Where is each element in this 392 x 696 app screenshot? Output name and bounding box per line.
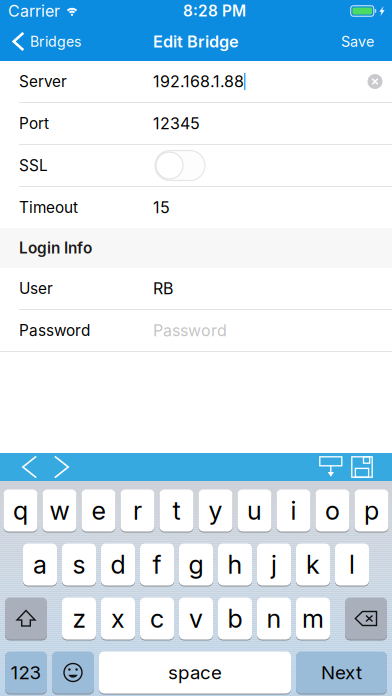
button[interactable]: space [99,651,291,694]
staticText: s [72,549,85,580]
button[interactable]: h [218,543,252,586]
button[interactable]: j [257,543,291,586]
button[interactable]: q [3,489,37,532]
button[interactable]: Next [296,651,387,694]
staticText: Password [19,321,90,340]
button[interactable]: Emoji [52,651,94,694]
staticText: j [271,549,277,580]
staticText: r [133,495,142,526]
staticText: k [306,549,320,580]
button[interactable]: 123 [5,651,47,694]
button[interactable]: g [179,543,213,586]
button[interactable]: c [140,597,174,640]
staticText: SSL [19,156,48,175]
button[interactable]: i [276,489,310,532]
button[interactable]: x [101,597,135,640]
staticText: 8:28 PM [183,2,246,20]
staticText: Edit Bridge [153,32,239,51]
staticText: l [349,549,355,580]
button[interactable]: n [257,597,291,640]
button[interactable]: m [296,597,330,640]
staticText: 123 [10,661,41,684]
staticText: Save [341,33,374,50]
button[interactable]: a [23,543,57,586]
staticText: Server [19,72,67,91]
staticText: Password [153,321,227,340]
button[interactable]: Port [0,103,392,144]
staticText: h [227,549,242,580]
staticText: i [290,495,296,526]
staticText: x [111,603,125,634]
button[interactable]: u [237,489,271,532]
button[interactable]: Previous field [0,453,54,481]
button[interactable]: p [354,489,388,532]
button[interactable]: e [81,489,115,532]
staticText: t [172,495,180,526]
button[interactable]: z [62,597,96,640]
button[interactable]: d [101,543,135,586]
staticText: 15 [153,198,170,217]
staticText: Bridges [30,33,81,50]
button[interactable]: Save [343,453,382,481]
button[interactable]: Timeout [0,187,392,228]
staticText: a [33,549,47,580]
staticText: c [150,603,164,634]
button[interactable]: SSL [153,148,207,182]
button[interactable]: w [42,489,76,532]
button[interactable]: Save [323,22,392,61]
staticText: p [364,495,379,526]
staticText: space [168,661,222,684]
button[interactable]: k [296,543,330,586]
staticText: m [302,603,324,634]
staticText: Timeout [19,198,78,217]
button[interactable]: Bridges [0,22,91,61]
button[interactable]: Clear text [360,66,390,96]
staticText: d [110,549,125,580]
staticText: o [325,495,340,526]
staticText: 12345 [153,114,200,133]
button[interactable]: s [62,543,96,586]
button[interactable]: f [140,543,174,586]
staticText: w [49,495,69,526]
staticText: v [189,603,203,634]
staticText: Port [19,114,49,133]
staticText: z [72,603,85,634]
staticText: Login Info [19,239,92,257]
staticText: q [13,495,28,526]
button[interactable]: Password [0,310,392,351]
button[interactable]: v [179,597,213,640]
button[interactable]: User [0,268,392,309]
button[interactable]: b [218,597,252,640]
staticText: RB [153,279,173,298]
staticText: e [91,495,105,526]
button[interactable]: Delete [345,597,387,640]
staticText: y [208,495,222,526]
button[interactable]: t [159,489,193,532]
staticText: User [19,279,53,298]
button[interactable]: Next field [54,453,81,481]
staticText: b [227,603,242,634]
button[interactable]: o [315,489,349,532]
button[interactable]: Shift [5,597,47,640]
staticText: Carrier [8,1,60,21]
staticText: n [266,603,281,634]
button[interactable]: Server [0,61,392,102]
staticText: u [247,495,262,526]
staticText: Next [321,661,362,684]
button[interactable]: SSL [0,145,392,186]
button[interactable]: r [120,489,154,532]
button[interactable]: y [198,489,232,532]
button[interactable]: l [335,543,369,586]
staticText: f [152,549,161,580]
button[interactable]: Dismiss keyboard [309,453,343,481]
staticText: g [188,549,203,580]
staticText: 192.168.1.88 [153,72,244,91]
